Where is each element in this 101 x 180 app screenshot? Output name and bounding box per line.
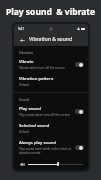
staticText: Default	[19, 83, 30, 87]
button[interactable]: Selected sound	[14, 120, 88, 137]
staticText: Vibrate	[19, 59, 34, 65]
staticText: Play sound	[19, 106, 41, 112]
staticText: Always play sound	[19, 140, 56, 146]
button[interactable]: Volume slider	[57, 162, 59, 166]
staticText: Vibrate when turn off the screen	[19, 66, 65, 70]
staticText: Play sound & vibrate	[0, 6, 101, 18]
button[interactable]: Toggle	[75, 62, 84, 67]
staticText: Play sound even while in the silent or v…	[19, 147, 72, 155]
staticText: 9:41	[18, 27, 24, 31]
button[interactable]: Volume	[19, 161, 25, 167]
button[interactable]: Vibration pattern	[14, 73, 88, 90]
staticText: Default	[19, 130, 30, 134]
button[interactable]: Play sound	[14, 103, 88, 120]
button[interactable]: Toggle	[75, 109, 84, 114]
staticText: Vibration & sound	[29, 36, 72, 43]
button[interactable]: Back	[18, 36, 26, 44]
staticText: Selected sound	[19, 123, 50, 129]
staticText: Play sound when turn off the screen	[19, 113, 70, 117]
button[interactable]: Vibrate	[14, 56, 88, 73]
staticText: Vibration	[19, 51, 33, 55]
button[interactable]: Toggle	[75, 145, 84, 150]
button[interactable]: Always play sound	[14, 137, 88, 158]
staticText: Vibration pattern	[19, 76, 54, 82]
staticText: Sound	[19, 98, 29, 102]
